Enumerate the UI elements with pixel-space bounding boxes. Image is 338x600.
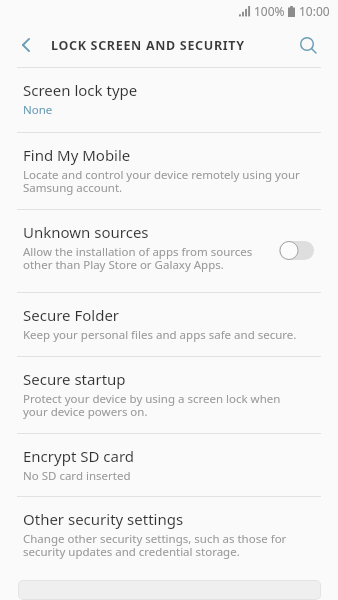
staticText: Find My Mobile: [23, 147, 131, 165]
staticText: 10:00: [299, 3, 330, 19]
button[interactable]: Find My Mobile: [0, 133, 338, 209]
staticText: LOCK SCREEN AND SECURITY: [51, 37, 245, 54]
button[interactable]: Search: [278, 28, 338, 62]
staticText: Change other security settings, such as …: [23, 533, 287, 559]
staticText: Screen lock type: [23, 82, 138, 100]
staticText: Protect your device by using a screen lo…: [23, 393, 281, 419]
staticText: Unknown sources: [23, 224, 149, 242]
staticText: Locate and control your device remotely …: [23, 169, 300, 195]
staticText: Other security settings: [23, 511, 184, 529]
button[interactable]: Secure startup: [0, 357, 338, 433]
staticText: None: [23, 104, 53, 117]
button[interactable]: Navigate up: [0, 28, 52, 62]
button[interactable]: Unknown sources toggle: [279, 241, 314, 260]
button[interactable]: Screen lock type: [0, 68, 338, 132]
staticText: Secure startup: [23, 371, 126, 389]
staticText: No SD card inserted: [23, 470, 131, 483]
button[interactable]: Unknown sources: [0, 210, 338, 292]
staticText: Allow the installation of apps from sour…: [23, 246, 253, 272]
button[interactable]: Encrypt SD card: [0, 434, 338, 496]
button[interactable]: [18, 580, 321, 600]
staticText: Secure Folder: [23, 307, 120, 325]
button[interactable]: Secure Folder: [0, 293, 338, 356]
staticText: 100%: [254, 3, 285, 19]
staticText: Encrypt SD card: [23, 448, 135, 466]
staticText: Keep your personal files and apps safe a…: [23, 329, 297, 342]
button[interactable]: Other security settings: [0, 497, 338, 580]
